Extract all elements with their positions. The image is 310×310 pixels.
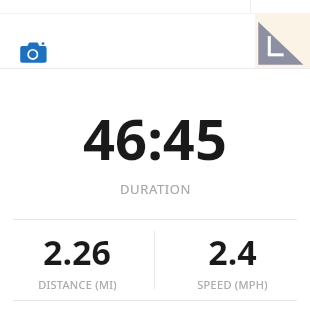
staticText: 46:45 [83, 100, 227, 176]
button[interactable]: Activity type [255, 13, 310, 68]
staticText: 2.4 [208, 229, 257, 275]
button[interactable]: 2.4 [155, 220, 310, 300]
button[interactable]: 2.26 [0, 220, 154, 300]
staticText: 2.26 [43, 229, 111, 275]
button[interactable]: 46:45 [0, 100, 310, 198]
staticText: DURATION [120, 180, 191, 198]
button[interactable]: Take photo [12, 30, 56, 74]
staticText: DISTANCE (MI) [38, 277, 117, 292]
staticText: SPEED (MPH) [197, 277, 268, 292]
